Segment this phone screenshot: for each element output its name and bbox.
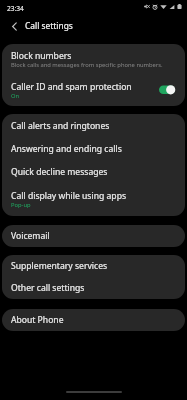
button[interactable]: Call display while using apps	[2, 183, 185, 216]
staticText: Call settings	[25, 20, 73, 31]
button[interactable]: Quick decline messages	[2, 160, 185, 183]
button[interactable]: Answering and ending calls	[2, 137, 185, 160]
button[interactable]: About Phone	[2, 309, 185, 331]
staticText: About Phone	[11, 314, 64, 326]
staticText: Caller ID and spam protection	[11, 81, 132, 93]
button[interactable]: Voicemail	[2, 225, 185, 247]
staticText: 23:34	[7, 4, 24, 13]
staticText: Call display while using apps	[11, 190, 127, 202]
staticText: Pop-up	[11, 201, 31, 209]
staticText: Other call settings	[11, 282, 85, 294]
button[interactable]: Supplementary services	[2, 255, 185, 277]
button[interactable]: Back	[3, 15, 25, 37]
staticText: Supplementary services	[11, 260, 108, 272]
staticText: Block numbers	[11, 50, 72, 62]
button[interactable]: Caller ID and spam protection	[2, 75, 185, 106]
staticText: Block calls and messages from specific p…	[11, 61, 163, 69]
button[interactable]: Caller ID and spam protection toggle	[159, 85, 176, 97]
staticText: Quick decline messages	[11, 166, 108, 178]
staticText: Answering and ending calls	[11, 143, 122, 155]
button[interactable]: Other call settings	[2, 277, 185, 299]
staticText: Call alerts and ringtones	[11, 120, 110, 132]
button[interactable]: Block numbers	[2, 44, 185, 75]
staticText: Voicemail	[11, 230, 50, 242]
staticText: On	[11, 92, 20, 100]
button[interactable]: Call alerts and ringtones	[2, 114, 185, 137]
